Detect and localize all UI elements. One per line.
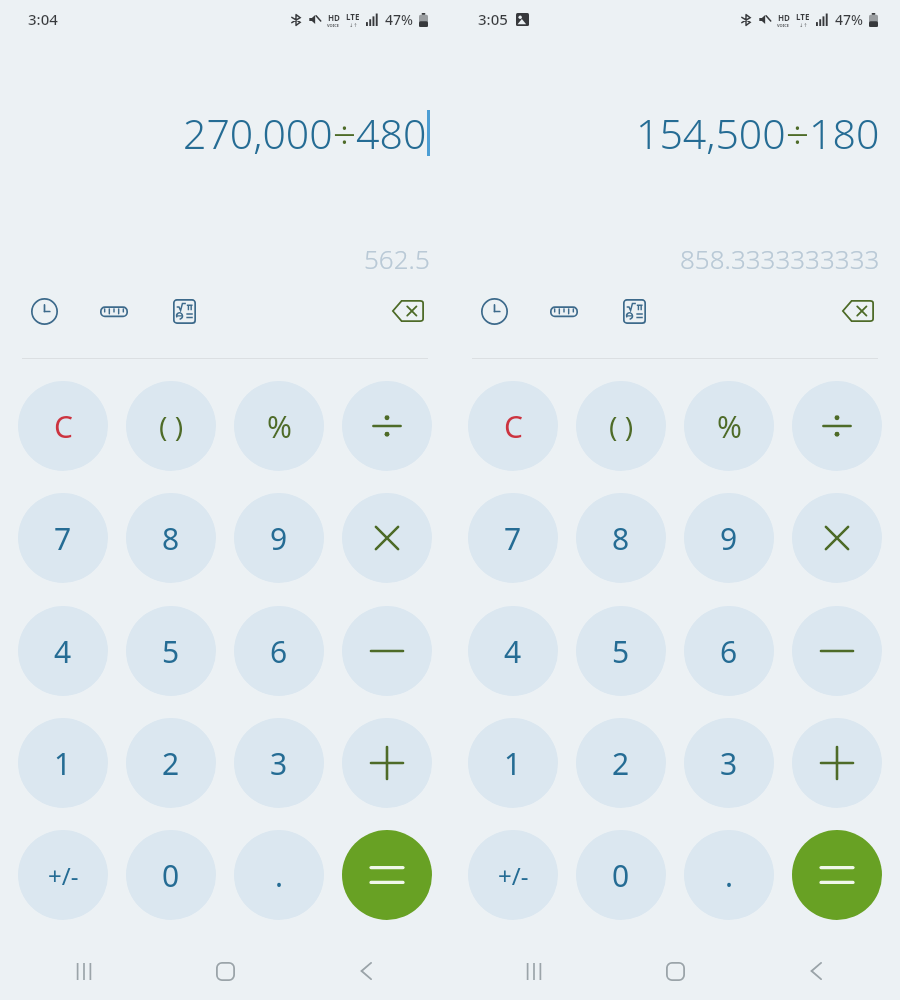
button[interactable]: Home — [201, 947, 249, 995]
button[interactable]: 8 — [126, 493, 216, 583]
button[interactable] — [342, 718, 432, 808]
button[interactable]: 0 — [126, 830, 216, 920]
staticText: 3 — [270, 743, 288, 784]
button[interactable]: 1 — [18, 718, 108, 808]
button[interactable]: 2 — [126, 718, 216, 808]
staticText: HD — [328, 12, 340, 23]
button[interactable]: . — [684, 830, 774, 920]
staticText: . — [725, 855, 734, 896]
button[interactable] — [342, 606, 432, 696]
button[interactable]: 0 — [576, 830, 666, 920]
staticText: 5 — [612, 631, 630, 672]
button[interactable] — [792, 830, 882, 920]
staticText: HD — [778, 12, 790, 23]
button[interactable]: 7 — [468, 493, 558, 583]
staticText: 1 — [504, 743, 522, 784]
button[interactable]: Unit converter — [92, 289, 136, 333]
button[interactable]: ( ) — [576, 381, 666, 471]
button[interactable] — [792, 606, 882, 696]
button[interactable]: Recents — [510, 947, 558, 995]
button[interactable]: 6 — [234, 606, 324, 696]
button[interactable]: Back — [342, 947, 390, 995]
button[interactable]: History — [472, 289, 516, 333]
staticText: 1 — [54, 743, 72, 784]
staticText: 5 — [162, 631, 180, 672]
button[interactable]: +/- — [18, 830, 108, 920]
staticText: LTE — [346, 11, 360, 22]
button[interactable]: Unit converter — [542, 289, 586, 333]
button[interactable]: 4 — [18, 606, 108, 696]
staticText: % — [267, 406, 292, 447]
staticText: 8 — [162, 518, 180, 559]
staticText: VOICE — [327, 23, 340, 28]
staticText: 6 — [270, 631, 288, 672]
staticText: 4 — [504, 631, 522, 672]
button[interactable]: ( ) — [126, 381, 216, 471]
button[interactable]: % — [684, 381, 774, 471]
staticText: 154,500÷180 — [636, 105, 880, 161]
button[interactable]: % — [234, 381, 324, 471]
staticText: 8 — [612, 518, 630, 559]
button[interactable] — [792, 493, 882, 583]
staticText: 2 — [612, 743, 630, 784]
button[interactable] — [792, 381, 882, 471]
button[interactable]: Recents — [60, 947, 108, 995]
staticText: C — [54, 406, 73, 447]
staticText: 3:05 — [478, 9, 508, 29]
staticText: +/- — [48, 859, 79, 892]
button[interactable] — [342, 381, 432, 471]
button[interactable]: Backspace — [386, 289, 430, 333]
button[interactable]: 4 — [468, 606, 558, 696]
staticText: ↓↑ — [799, 22, 808, 28]
button[interactable]: 9 — [234, 493, 324, 583]
staticText: C — [504, 406, 523, 447]
staticText: 270,000÷480 — [183, 105, 427, 161]
button[interactable]: . — [234, 830, 324, 920]
button[interactable]: 3 — [234, 718, 324, 808]
staticText: 9 — [270, 518, 288, 559]
staticText: 47% — [385, 10, 413, 29]
button[interactable]: Scientific calculator — [162, 289, 206, 333]
staticText: +/- — [498, 859, 529, 892]
button[interactable] — [792, 718, 882, 808]
button[interactable]: +/- — [468, 830, 558, 920]
button[interactable]: 9 — [684, 493, 774, 583]
button[interactable]: Backspace — [836, 289, 880, 333]
staticText: 0 — [162, 855, 180, 896]
staticText: ↓↑ — [349, 22, 358, 28]
button[interactable]: 3 — [684, 718, 774, 808]
staticText: ( ) — [609, 407, 634, 445]
staticText: VOICE — [777, 23, 790, 28]
button[interactable] — [342, 830, 432, 920]
button[interactable]: C — [18, 381, 108, 471]
staticText: 9 — [720, 518, 738, 559]
staticText: ( ) — [159, 407, 184, 445]
staticText: 562.5 — [364, 241, 430, 276]
button[interactable]: 5 — [576, 606, 666, 696]
button[interactable]: 5 — [126, 606, 216, 696]
staticText: % — [717, 406, 742, 447]
staticText: LTE — [796, 11, 810, 22]
staticText: 47% — [835, 10, 863, 29]
staticText: 858.3333333333 — [680, 241, 880, 276]
staticText: 3 — [720, 743, 738, 784]
button[interactable]: 7 — [18, 493, 108, 583]
staticText: . — [275, 855, 284, 896]
staticText: 7 — [54, 518, 72, 559]
button[interactable]: History — [22, 289, 66, 333]
button[interactable]: C — [468, 381, 558, 471]
staticText: 4 — [54, 631, 72, 672]
staticText: 6 — [720, 631, 738, 672]
button[interactable]: Scientific calculator — [612, 289, 656, 333]
staticText: 0 — [612, 855, 630, 896]
button[interactable]: 1 — [468, 718, 558, 808]
button[interactable]: 8 — [576, 493, 666, 583]
staticText: 3:04 — [28, 9, 58, 29]
button[interactable]: Home — [651, 947, 699, 995]
button[interactable]: 2 — [576, 718, 666, 808]
button[interactable] — [342, 493, 432, 583]
button[interactable]: Back — [792, 947, 840, 995]
staticText: 2 — [162, 743, 180, 784]
staticText: 7 — [504, 518, 522, 559]
button[interactable]: 6 — [684, 606, 774, 696]
